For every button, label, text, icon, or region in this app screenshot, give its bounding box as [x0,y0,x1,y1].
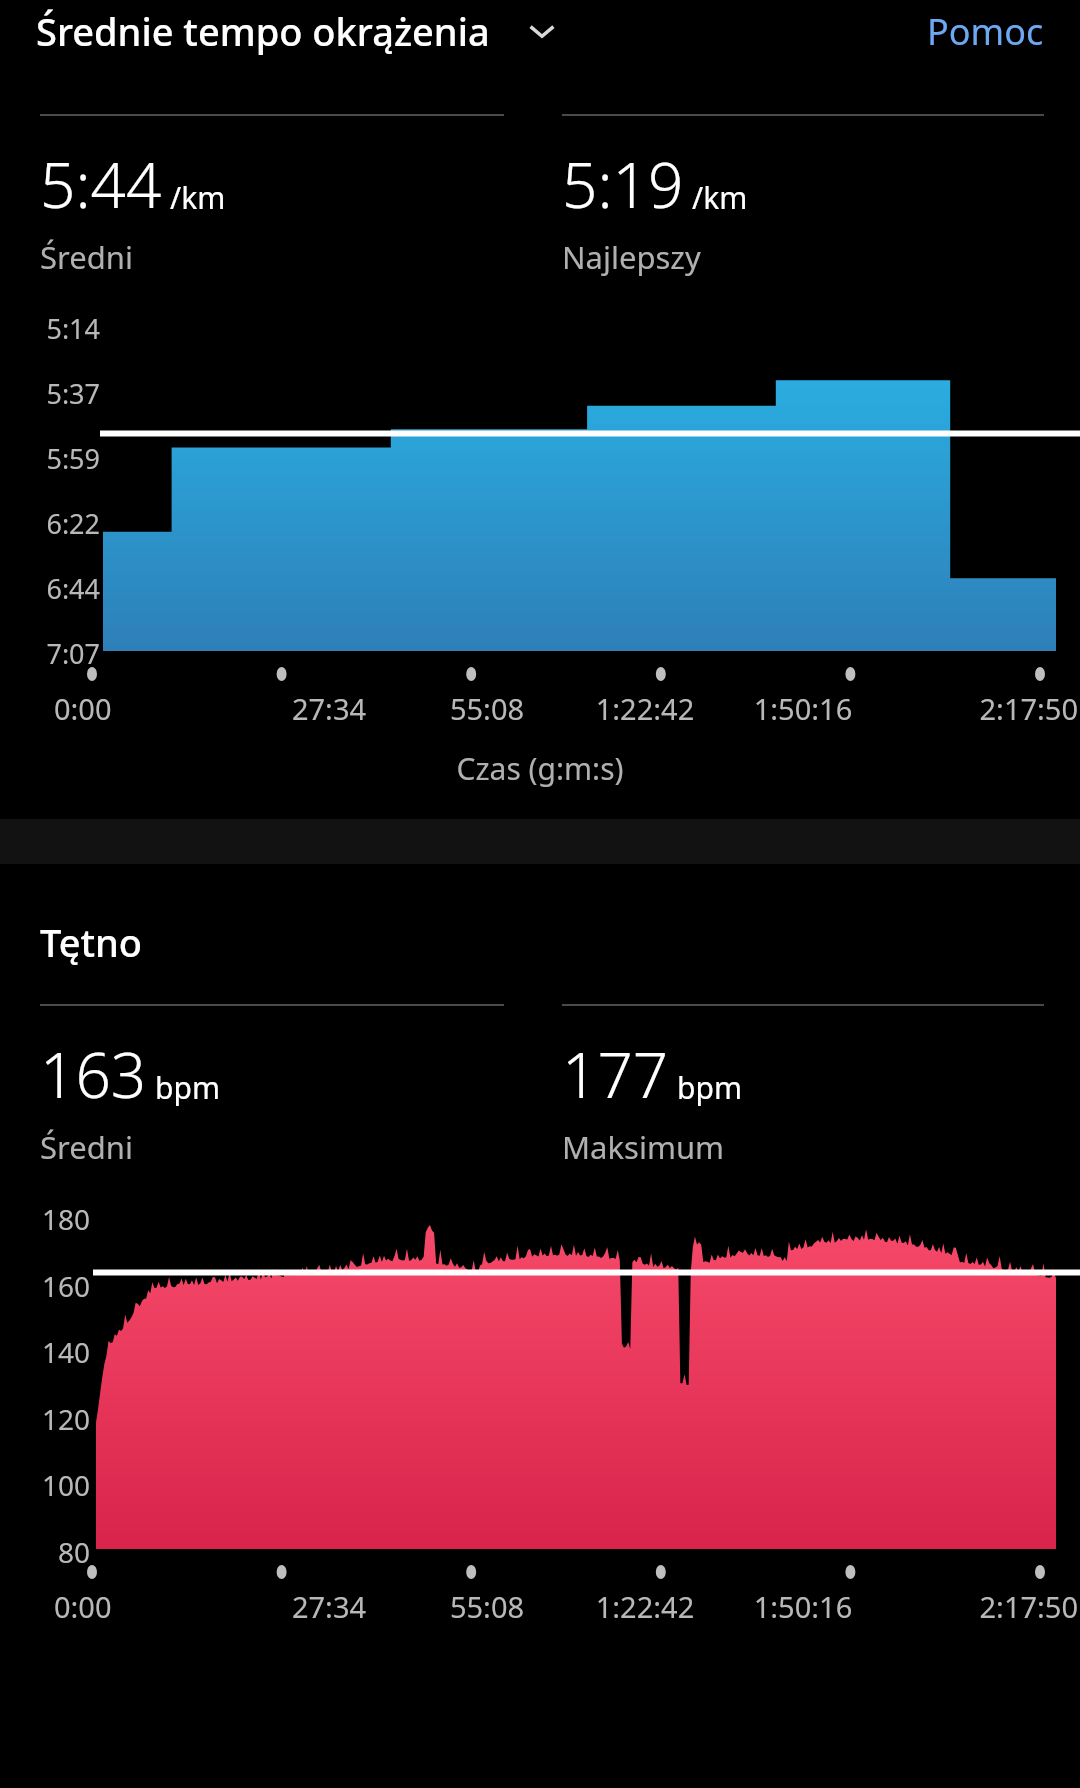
staticText: 160 [28,1267,90,1305]
staticText: 177 [562,1032,669,1116]
staticText: 2:17:50 [920,1587,1078,1626]
staticText: 0:00 [54,689,212,728]
staticText: 1:22:42 [566,1587,724,1626]
staticText: bpm [155,1067,220,1108]
staticText: Średni [40,236,133,278]
button[interactable]: 5:19 [562,114,1044,278]
staticText: 1:22:42 [566,689,724,728]
staticText: 0:00 [54,1587,212,1626]
staticText: Maksimum [562,1126,725,1168]
staticText: Tętno [40,916,143,968]
staticText: 55:08 [408,1587,566,1626]
staticText: 5:44 [40,142,162,226]
staticText: 5:59 [34,440,100,477]
staticText: /km [692,177,748,218]
staticText: Najlepszy [562,236,701,278]
staticText: 120 [28,1400,90,1438]
staticText: Pomoc [927,7,1044,56]
staticText: 5:19 [562,142,684,226]
other: Expand [520,9,564,53]
button[interactable]: 177 [562,1004,1044,1168]
staticText: 6:44 [34,570,100,607]
staticText: 7:07 [34,635,100,672]
button[interactable]: Pomoc [927,7,1044,56]
staticText: Średnie tempo okrążenia [36,5,490,57]
staticText: 27:34 [250,1587,408,1626]
staticText: 55:08 [408,689,566,728]
staticText: 80 [28,1533,90,1571]
staticText: 140 [28,1333,90,1371]
staticText: 2:17:50 [920,689,1078,728]
staticText: 5:37 [34,375,100,412]
button[interactable]: 163 [40,1004,504,1168]
staticText: 5:14 [34,310,100,347]
staticText: /km [170,177,226,218]
staticText: 6:22 [34,505,100,542]
button[interactable]: Średnie tempo okrążenia [36,5,564,57]
button[interactable]: 5:44 [40,114,504,278]
staticText: 180 [28,1200,90,1238]
staticText: 1:50:16 [724,689,882,728]
staticText: 27:34 [250,689,408,728]
staticText: 100 [28,1466,90,1504]
staticText: Średni [40,1126,133,1168]
staticText: Czas (g:m:s) [0,748,1080,789]
staticText: 163 [40,1032,147,1116]
staticText: 1:50:16 [724,1587,882,1626]
staticText: bpm [677,1067,742,1108]
